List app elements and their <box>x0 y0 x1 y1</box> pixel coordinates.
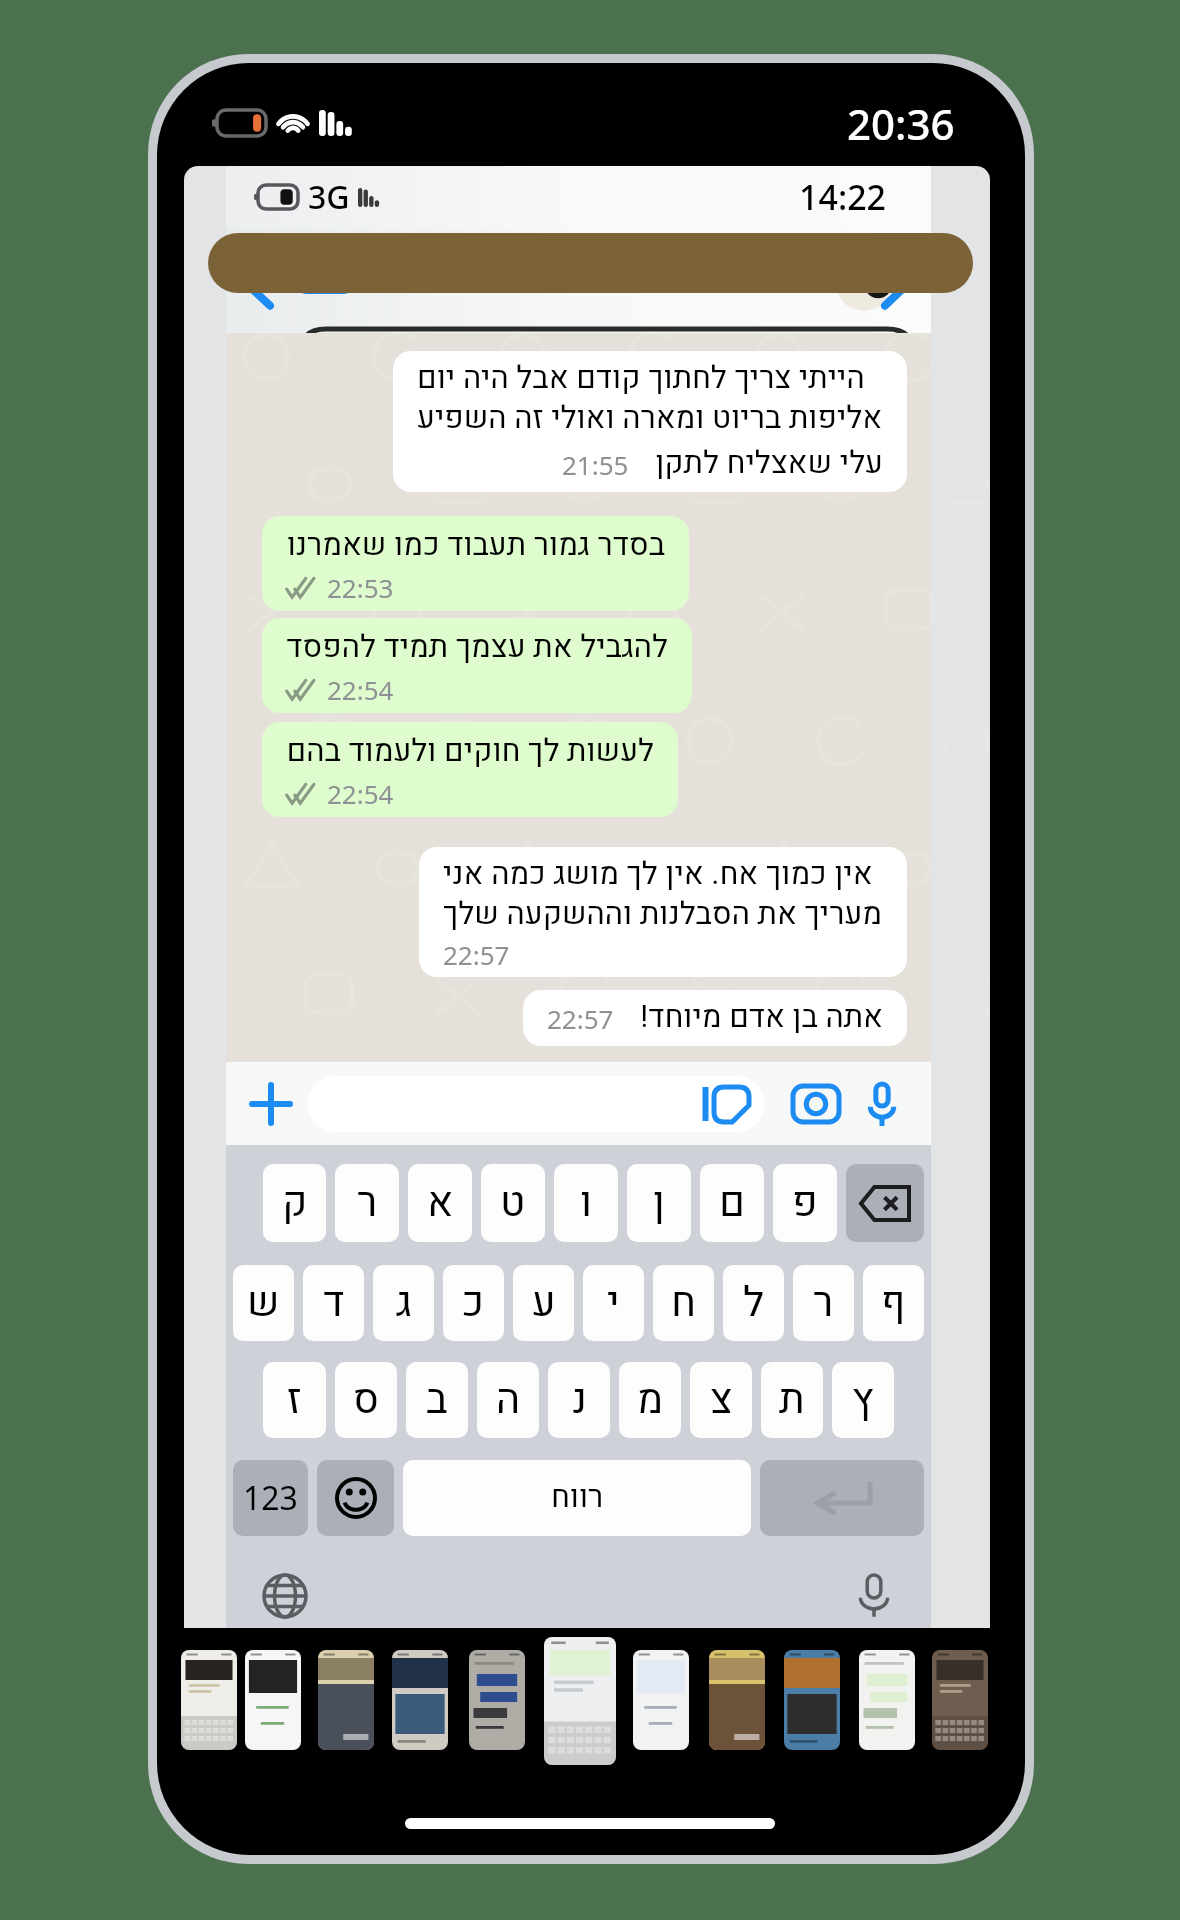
staticText: ץ <box>852 1370 874 1430</box>
staticText: ס <box>353 1370 380 1430</box>
button[interactable]: מ <box>619 1362 681 1438</box>
staticText: עלי שאצליח לתקן <box>655 441 883 487</box>
button[interactable] <box>633 1650 689 1750</box>
staticText: ת <box>779 1370 805 1430</box>
button[interactable]: Backspace <box>846 1164 924 1242</box>
button[interactable]: ם <box>700 1164 764 1242</box>
staticText: ק <box>282 1173 308 1233</box>
staticText: ו <box>580 1173 593 1233</box>
staticText: ע <box>532 1273 556 1333</box>
button[interactable]: Camera <box>789 1077 843 1131</box>
button[interactable]: ז <box>263 1362 326 1438</box>
button[interactable]: ו <box>554 1164 618 1242</box>
button[interactable]: ר <box>335 1164 399 1242</box>
staticText: לעשות לך חוקים ולעמוד בהם <box>286 729 654 775</box>
button[interactable]: ט <box>481 1164 545 1242</box>
button[interactable]: Attach <box>244 1077 298 1131</box>
button[interactable] <box>308 1076 765 1132</box>
staticText: ף <box>881 1273 906 1333</box>
staticText: להגביל את עצמך תמיד להפסד <box>286 625 668 671</box>
button[interactable]: ד <box>303 1265 364 1341</box>
staticText: ה <box>496 1370 521 1430</box>
staticText: צ <box>710 1370 733 1430</box>
button[interactable]: לעשות לך חוקים ולעמוד בהם <box>262 722 678 817</box>
button[interactable] <box>932 1650 988 1750</box>
button[interactable]: בסדר גמור תעבוד כמו שאמרנו <box>262 516 689 611</box>
button[interactable]: ה <box>477 1362 539 1438</box>
button[interactable] <box>318 1650 374 1750</box>
button[interactable]: ץ <box>832 1362 894 1438</box>
button[interactable]: 123 <box>233 1460 308 1536</box>
staticText: נ <box>572 1370 587 1430</box>
button[interactable]: צ <box>690 1362 752 1438</box>
staticText: ד <box>323 1273 345 1333</box>
button[interactable]: Return <box>760 1460 924 1536</box>
staticText: 123 <box>243 1476 298 1520</box>
button[interactable] <box>784 1650 840 1750</box>
button[interactable]: ב <box>406 1362 468 1438</box>
button[interactable]: ר <box>793 1265 854 1341</box>
staticText: הייתי צריך לחתוך קודם אבל היה יום אליפות… <box>417 356 883 441</box>
staticText: כ <box>462 1273 485 1333</box>
button[interactable]: א <box>408 1164 472 1242</box>
button[interactable]: ף <box>863 1265 924 1341</box>
button[interactable]: ג <box>373 1265 434 1341</box>
staticText: ז <box>287 1370 302 1430</box>
button[interactable] <box>392 1650 448 1750</box>
staticText: א <box>427 1173 454 1233</box>
button[interactable] <box>181 1650 237 1750</box>
button[interactable] <box>469 1650 525 1750</box>
staticText: אתה בן אדם מיוחד! <box>640 995 883 1041</box>
staticText: 22:54 <box>327 672 394 707</box>
button[interactable]: הייתי צריך לחתוך קודם אבל היה יום אליפות… <box>393 351 907 492</box>
staticText: 20:36 <box>847 95 955 152</box>
button[interactable]: ע <box>513 1265 574 1341</box>
staticText: אין כמוך אח. אין לך מושג כמה אני מעריך א… <box>443 852 883 937</box>
button[interactable]: כ <box>443 1265 504 1341</box>
staticText: 22:57 <box>547 1001 614 1036</box>
staticText: ם <box>719 1173 746 1233</box>
staticText: ר <box>813 1273 834 1333</box>
button[interactable] <box>245 1650 301 1750</box>
button[interactable]: רווח <box>403 1460 751 1536</box>
button[interactable]: 22:57 <box>523 990 907 1046</box>
staticText: 22:57 <box>443 937 510 972</box>
button[interactable]: ק <box>263 1164 326 1242</box>
button[interactable]: ת <box>761 1362 823 1438</box>
button[interactable]: ס <box>335 1362 397 1438</box>
button[interactable]: אין כמוך אח. אין לך מושג כמה אני מעריך א… <box>419 847 907 977</box>
button[interactable]: Emoji <box>317 1460 394 1536</box>
staticText: 22:53 <box>327 570 394 605</box>
button[interactable]: ל <box>723 1265 784 1341</box>
staticText: רווח <box>551 1475 604 1521</box>
staticText: ט <box>500 1173 526 1233</box>
staticText: בסדר גמור תעבוד כמו שאמרנו <box>286 523 665 569</box>
staticText: ג <box>396 1273 412 1333</box>
staticText: י <box>607 1273 620 1333</box>
button[interactable] <box>859 1650 915 1750</box>
staticText: 21:55 <box>562 447 629 482</box>
staticText: ר <box>357 1173 378 1233</box>
button[interactable]: Change keyboard <box>262 1573 308 1619</box>
button[interactable]: ן <box>627 1164 691 1242</box>
button[interactable]: להגביל את עצמך תמיד להפסד <box>262 618 692 713</box>
staticText: 14:22 <box>799 174 887 220</box>
button[interactable]: Dictate <box>857 1573 891 1619</box>
button[interactable]: ח <box>653 1265 714 1341</box>
staticText: ן <box>653 1173 665 1233</box>
staticText: ש <box>247 1273 280 1333</box>
staticText: 22:54 <box>327 776 394 811</box>
button[interactable] <box>709 1650 765 1750</box>
staticText: 3G <box>308 175 350 219</box>
staticText: ח <box>671 1273 696 1333</box>
button[interactable]: ש <box>233 1265 294 1341</box>
staticText: ב <box>426 1370 448 1430</box>
staticText: פ <box>792 1173 818 1233</box>
button[interactable]: נ <box>548 1362 610 1438</box>
button[interactable] <box>544 1637 616 1765</box>
button[interactable]: Voice message <box>855 1077 909 1131</box>
button[interactable]: י <box>583 1265 644 1341</box>
button[interactable]: פ <box>773 1164 837 1242</box>
staticText: ל <box>743 1273 765 1333</box>
staticText: מ <box>637 1370 664 1430</box>
